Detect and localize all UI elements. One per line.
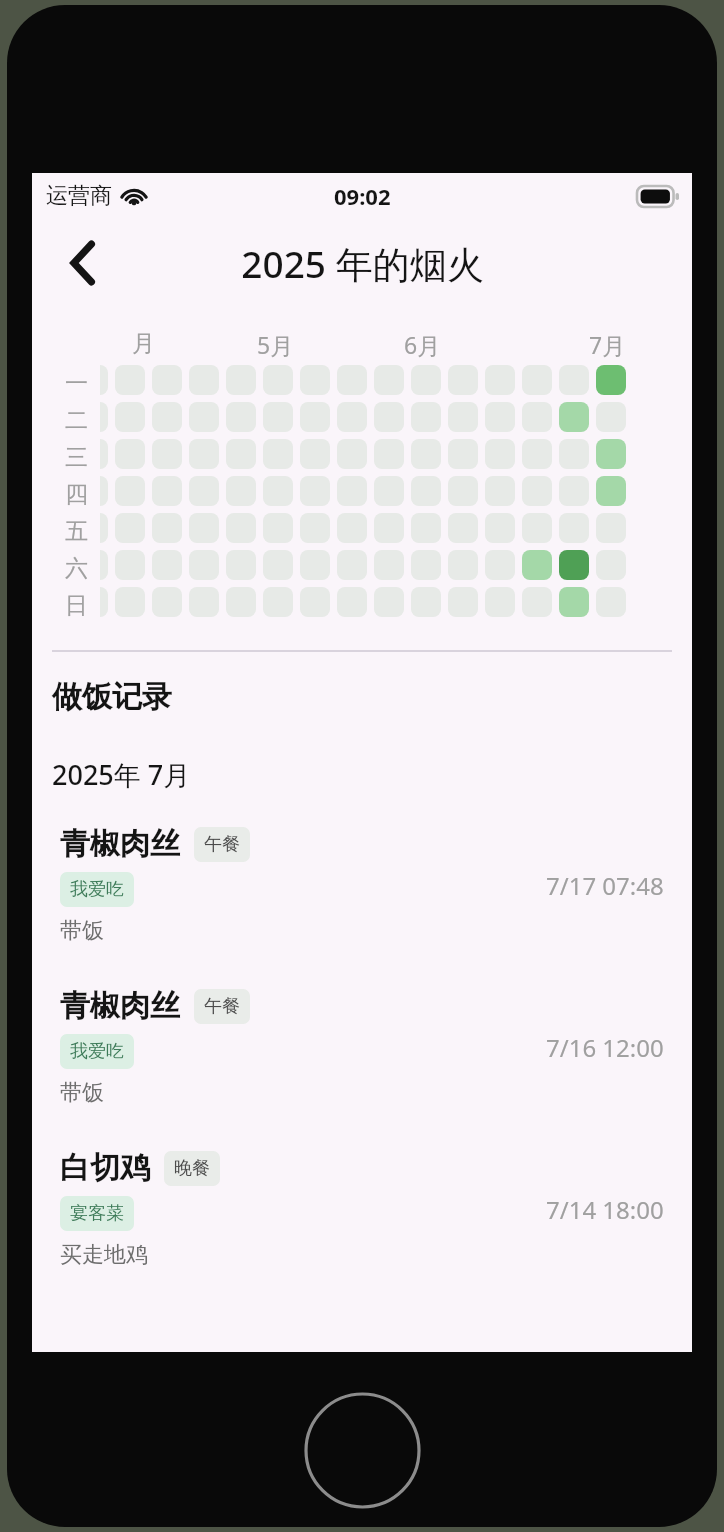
button[interactable] <box>596 513 626 543</box>
button[interactable] <box>263 513 293 543</box>
button[interactable]: 白切鸡 <box>32 1149 692 1269</box>
button[interactable] <box>226 402 256 432</box>
button[interactable] <box>411 587 441 617</box>
button[interactable] <box>152 402 182 432</box>
button[interactable] <box>226 439 256 469</box>
button[interactable] <box>596 587 626 617</box>
button[interactable] <box>152 476 182 506</box>
button[interactable] <box>485 587 515 617</box>
button[interactable] <box>337 402 367 432</box>
button[interactable] <box>374 402 404 432</box>
button[interactable] <box>300 513 330 543</box>
button[interactable] <box>337 513 367 543</box>
button[interactable] <box>115 439 145 469</box>
button[interactable] <box>559 587 589 617</box>
button[interactable] <box>263 439 293 469</box>
button[interactable] <box>100 550 108 580</box>
button[interactable] <box>522 476 552 506</box>
button[interactable] <box>300 550 330 580</box>
button[interactable] <box>374 550 404 580</box>
button[interactable] <box>337 365 367 395</box>
button[interactable] <box>337 476 367 506</box>
button[interactable] <box>189 365 219 395</box>
button[interactable]: 青椒肉丝 <box>32 825 692 945</box>
button[interactable] <box>115 513 145 543</box>
button[interactable] <box>226 365 256 395</box>
button[interactable] <box>411 365 441 395</box>
button[interactable] <box>263 476 293 506</box>
button[interactable] <box>485 513 515 543</box>
button[interactable] <box>596 439 626 469</box>
button[interactable] <box>559 402 589 432</box>
button[interactable] <box>189 439 219 469</box>
button[interactable] <box>115 365 145 395</box>
button[interactable] <box>485 550 515 580</box>
button[interactable] <box>448 439 478 469</box>
button[interactable] <box>448 365 478 395</box>
button[interactable]: 青椒肉丝 <box>32 987 692 1107</box>
button[interactable] <box>226 476 256 506</box>
button[interactable] <box>559 550 589 580</box>
button[interactable] <box>374 365 404 395</box>
button[interactable] <box>226 550 256 580</box>
button[interactable] <box>411 513 441 543</box>
button[interactable] <box>411 402 441 432</box>
button[interactable] <box>337 439 367 469</box>
button[interactable] <box>374 439 404 469</box>
button[interactable] <box>152 365 182 395</box>
button[interactable] <box>485 402 515 432</box>
button[interactable] <box>100 365 108 395</box>
button[interactable] <box>559 365 589 395</box>
button[interactable] <box>596 550 626 580</box>
button[interactable] <box>596 365 626 395</box>
button[interactable] <box>337 550 367 580</box>
button[interactable] <box>300 402 330 432</box>
button[interactable] <box>115 587 145 617</box>
button[interactable] <box>337 587 367 617</box>
button[interactable] <box>152 439 182 469</box>
button[interactable] <box>226 513 256 543</box>
button[interactable] <box>152 587 182 617</box>
button[interactable] <box>522 439 552 469</box>
button[interactable] <box>100 587 108 617</box>
button[interactable] <box>189 402 219 432</box>
button[interactable] <box>115 476 145 506</box>
button[interactable] <box>559 476 589 506</box>
button[interactable] <box>522 402 552 432</box>
button[interactable] <box>374 587 404 617</box>
button[interactable] <box>485 439 515 469</box>
button[interactable]: Home <box>304 1392 421 1509</box>
button[interactable] <box>448 587 478 617</box>
button[interactable] <box>100 402 108 432</box>
button[interactable] <box>596 402 626 432</box>
button[interactable] <box>263 587 293 617</box>
button[interactable] <box>152 550 182 580</box>
button[interactable] <box>189 476 219 506</box>
button[interactable] <box>300 439 330 469</box>
button[interactable] <box>522 550 552 580</box>
button[interactable] <box>485 365 515 395</box>
button[interactable] <box>189 550 219 580</box>
button[interactable] <box>411 439 441 469</box>
button[interactable] <box>300 587 330 617</box>
button[interactable] <box>448 513 478 543</box>
button[interactable] <box>485 476 515 506</box>
button[interactable] <box>115 550 145 580</box>
button[interactable] <box>263 365 293 395</box>
button[interactable] <box>100 513 108 543</box>
button[interactable] <box>300 365 330 395</box>
button[interactable] <box>300 476 330 506</box>
button[interactable]: Back <box>54 234 112 292</box>
button[interactable] <box>152 513 182 543</box>
button[interactable] <box>448 476 478 506</box>
button[interactable] <box>448 402 478 432</box>
button[interactable] <box>263 550 293 580</box>
button[interactable] <box>115 402 145 432</box>
button[interactable] <box>189 587 219 617</box>
button[interactable] <box>559 439 589 469</box>
button[interactable] <box>411 476 441 506</box>
button[interactable] <box>226 587 256 617</box>
button[interactable] <box>448 550 478 580</box>
button[interactable] <box>100 439 108 469</box>
button[interactable] <box>522 365 552 395</box>
